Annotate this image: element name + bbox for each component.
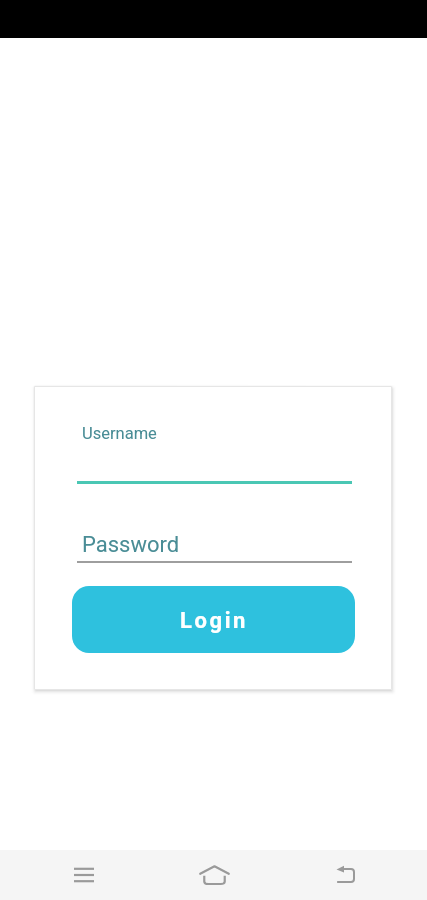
button[interactable]: Menu bbox=[47, 850, 120, 900]
staticText: Username bbox=[82, 424, 157, 443]
staticText: Login bbox=[180, 608, 249, 634]
button[interactable]: Home bbox=[178, 850, 251, 900]
button[interactable]: Password bbox=[77, 525, 352, 563]
staticText: Password bbox=[82, 532, 180, 558]
button[interactable]: Login bbox=[72, 586, 355, 653]
button[interactable]: Back bbox=[309, 850, 382, 900]
button[interactable]: Username bbox=[77, 423, 352, 484]
